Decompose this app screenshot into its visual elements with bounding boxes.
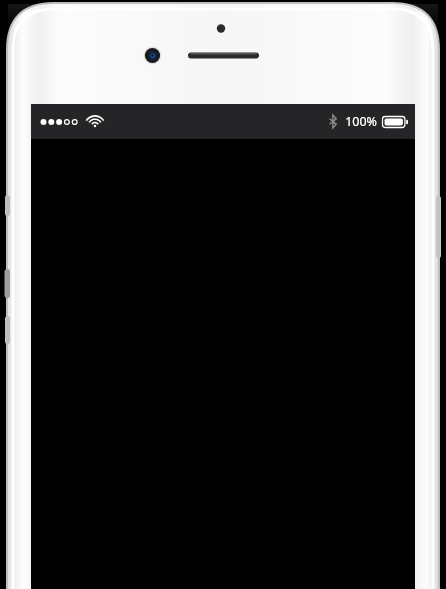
button[interactable]: Bluetooth and battery 100 percent: [329, 113, 408, 130]
button[interactable]: Carrier signal and Wi-Fi: [40, 116, 102, 127]
staticText: 100%: [345, 113, 377, 130]
